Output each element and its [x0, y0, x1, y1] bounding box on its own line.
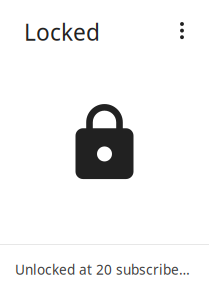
staticText: Locked — [24, 17, 100, 47]
staticText: Unlocked at 20 subscribers per month — [15, 260, 194, 279]
button[interactable]: More options — [164, 11, 200, 51]
